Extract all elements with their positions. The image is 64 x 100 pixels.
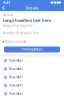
staticText: Row label <box>9 67 23 71</box>
button[interactable]: Primary Action <box>4 46 60 52</box>
staticText: Row label <box>9 59 23 62</box>
staticText: Row label <box>9 92 23 96</box>
button[interactable]: Back <box>0 5 7 11</box>
staticText: Bullet item text <box>5 40 26 43</box>
staticText: Another description line <box>3 31 39 35</box>
staticText: Details <box>25 5 38 11</box>
staticText: SECTION <box>3 13 13 16</box>
staticText: 9:41 <box>3 0 10 5</box>
staticText: Primary Action <box>21 48 42 51</box>
staticText: Row label <box>9 75 23 79</box>
staticText: Row label <box>9 84 23 87</box>
staticText: Large headline text here <box>3 17 51 23</box>
staticText: Supporting copy line <box>3 24 33 27</box>
